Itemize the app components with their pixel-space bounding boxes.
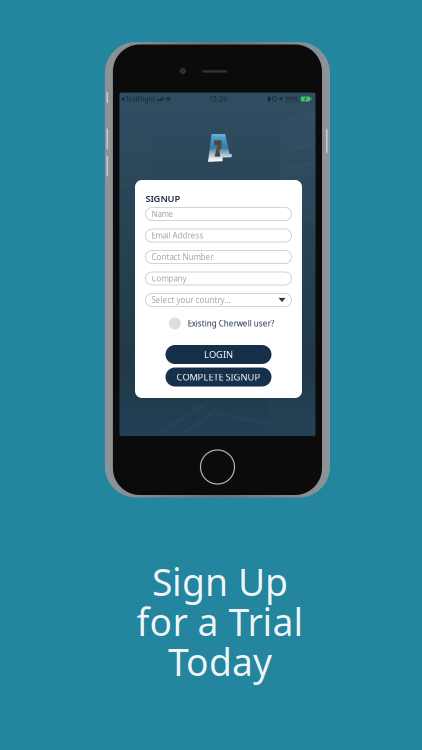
staticText: Select your country... bbox=[151, 295, 230, 305]
staticText: Existing Cherwell user? bbox=[188, 318, 274, 329]
staticText: Email Address bbox=[151, 230, 203, 241]
button[interactable]: LOGIN bbox=[165, 345, 271, 364]
staticText: COMPLETE SIGNUP bbox=[176, 371, 260, 383]
staticText: SIGNUP bbox=[145, 192, 180, 205]
staticText: LOGIN bbox=[204, 348, 233, 361]
staticText: Company bbox=[151, 273, 186, 284]
staticText: 99% bbox=[285, 94, 299, 103]
staticText: for a Trial bbox=[136, 597, 303, 646]
staticText: Sign Up bbox=[152, 557, 288, 606]
staticText: 15:29 bbox=[209, 94, 227, 103]
button[interactable]: Existing Cherwell user? bbox=[169, 316, 274, 330]
staticText: TestFlight bbox=[125, 95, 154, 103]
button[interactable]: COMPLETE SIGNUP bbox=[165, 367, 271, 386]
staticText: Name bbox=[151, 209, 173, 219]
staticText: Contact Number bbox=[151, 252, 213, 262]
staticText: Today bbox=[168, 637, 272, 686]
